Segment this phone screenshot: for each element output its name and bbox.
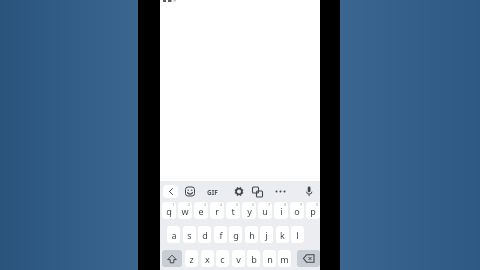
staticText: 7 xyxy=(268,202,271,207)
button[interactable]: z xyxy=(185,250,198,267)
staticText: 5 xyxy=(236,202,239,207)
staticText: 3 xyxy=(204,202,207,207)
button[interactable]: a xyxy=(167,226,180,243)
staticText: c xyxy=(220,253,225,265)
staticText: j xyxy=(265,229,268,241)
button[interactable]: i xyxy=(274,202,288,219)
button[interactable]: h xyxy=(245,226,258,243)
staticText: 4 xyxy=(220,202,223,207)
staticText: w xyxy=(181,205,189,217)
staticText: b xyxy=(251,253,257,265)
button[interactable]: l xyxy=(291,226,304,243)
button[interactable]: w xyxy=(178,202,192,219)
staticText: l xyxy=(296,229,299,241)
staticText: 0 xyxy=(316,202,319,207)
staticText: h xyxy=(249,229,255,241)
button[interactable]: GIF xyxy=(207,188,218,197)
staticText: v xyxy=(236,253,241,265)
staticText: t xyxy=(231,205,235,217)
staticText: e xyxy=(198,205,204,217)
staticText: 1 xyxy=(172,202,175,207)
staticText: f xyxy=(219,229,223,241)
button[interactable]: e xyxy=(194,202,208,219)
button[interactable]: t xyxy=(226,202,240,219)
staticText: g xyxy=(233,229,239,241)
staticText: 6 xyxy=(252,202,255,207)
staticText: p xyxy=(310,205,316,217)
staticText: a xyxy=(171,229,177,241)
button[interactable]: q xyxy=(162,202,176,219)
button[interactable]: b xyxy=(247,250,260,267)
staticText: d xyxy=(202,229,208,241)
button[interactable]: v xyxy=(232,250,245,267)
button[interactable]: u xyxy=(258,202,272,219)
button[interactable]: s xyxy=(183,226,196,243)
staticText: o xyxy=(294,205,300,217)
button[interactable]: y xyxy=(242,202,256,219)
button[interactable]: o xyxy=(290,202,304,219)
button[interactable]: n xyxy=(263,250,276,267)
button[interactable] xyxy=(163,185,178,198)
staticText: x xyxy=(205,253,210,265)
staticText: 8 xyxy=(284,202,287,207)
staticText: 2 xyxy=(188,202,191,207)
staticText: s xyxy=(187,229,192,241)
button[interactable]: k xyxy=(276,226,289,243)
button[interactable]: m xyxy=(278,250,291,267)
button[interactable] xyxy=(297,250,320,267)
staticText: q xyxy=(166,205,172,217)
staticText: n xyxy=(267,253,273,265)
button[interactable]: c xyxy=(216,250,229,267)
staticText: i xyxy=(280,205,283,217)
staticText: z xyxy=(189,253,194,265)
button[interactable]: g xyxy=(229,226,242,243)
button[interactable]: p xyxy=(306,202,320,219)
staticText: k xyxy=(280,229,285,241)
button[interactable]: j xyxy=(260,226,273,243)
staticText: y xyxy=(247,205,252,217)
button[interactable]: x xyxy=(201,250,214,267)
button[interactable]: r xyxy=(210,202,224,219)
button[interactable]: f xyxy=(214,226,227,243)
staticText: r xyxy=(215,205,219,217)
staticText: 9 xyxy=(300,202,303,207)
staticText: u xyxy=(262,205,268,217)
button[interactable]: d xyxy=(198,226,211,243)
button[interactable] xyxy=(162,250,182,267)
staticText: m xyxy=(280,253,289,265)
